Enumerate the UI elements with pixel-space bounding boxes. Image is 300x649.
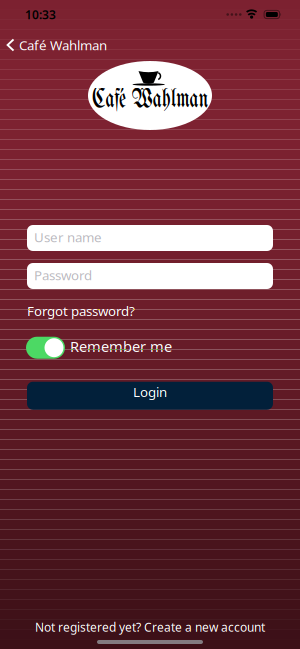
staticText: 10:33 <box>25 6 56 22</box>
staticText: Password <box>34 266 92 284</box>
staticText: Café Wahlman <box>19 36 107 54</box>
staticText: Login <box>133 383 167 401</box>
button[interactable]: Not registered yet? Create a new account <box>35 619 265 635</box>
staticText: Café Wahlman <box>72 86 227 113</box>
button[interactable]: Forgot password? <box>27 302 135 320</box>
button[interactable]: Back <box>6 36 107 54</box>
staticText: Forgot password? <box>27 302 135 320</box>
staticText: User name <box>34 228 102 246</box>
button[interactable]: Remember me <box>26 337 65 359</box>
staticText: Not registered yet? Create a new account <box>35 619 265 635</box>
staticText: Remember me <box>70 336 172 356</box>
button[interactable]: Login <box>27 382 273 410</box>
